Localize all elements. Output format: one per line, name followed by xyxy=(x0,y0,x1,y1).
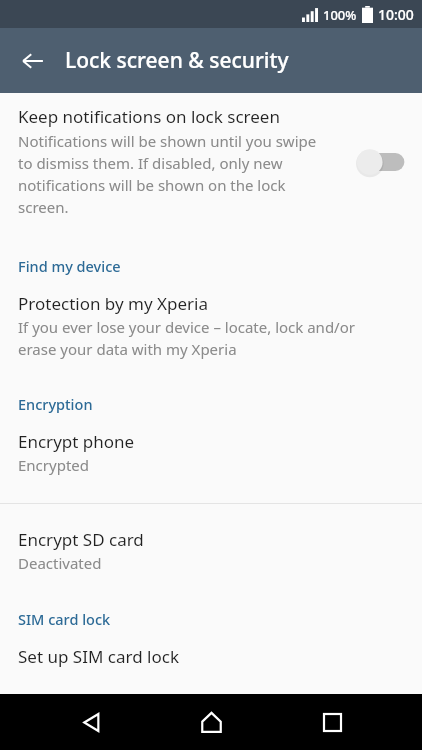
button[interactable]: Set up SIM card lock xyxy=(0,641,422,672)
staticText: Lock screen & security xyxy=(65,46,289,75)
button[interactable]: Home xyxy=(181,694,241,750)
staticText: Protection by my Xperia xyxy=(18,292,209,315)
staticText: Encrypt phone xyxy=(18,430,135,453)
staticText: 100% xyxy=(323,6,357,24)
button[interactable]: Keep notifications on lock screen toggle xyxy=(356,144,408,180)
staticText: Set up SIM card lock xyxy=(18,645,179,668)
staticText: Notifications will be shown until you sw… xyxy=(18,131,317,218)
staticText: SIM card lock xyxy=(18,609,111,629)
button[interactable]: Encrypt phone xyxy=(0,426,422,479)
staticText: Deactivated xyxy=(18,553,102,573)
button[interactable]: Keep notifications on lock screen xyxy=(0,93,422,228)
staticText: Encrypt SD card xyxy=(18,528,144,551)
button[interactable]: Encrypt SD card xyxy=(0,524,422,577)
staticText: Keep notifications on lock screen xyxy=(18,105,280,128)
button[interactable]: Back xyxy=(10,38,56,84)
button[interactable]: Recent apps xyxy=(302,694,362,750)
staticText: Encrypted xyxy=(18,455,89,475)
button[interactable]: Protection by my Xperia xyxy=(0,288,422,364)
staticText: Find my device xyxy=(18,256,121,276)
staticText: 10:00 xyxy=(378,5,414,24)
staticText: If you ever lose your device – locate, l… xyxy=(18,317,355,360)
button[interactable]: Back xyxy=(61,694,121,750)
staticText: Encryption xyxy=(18,394,93,414)
